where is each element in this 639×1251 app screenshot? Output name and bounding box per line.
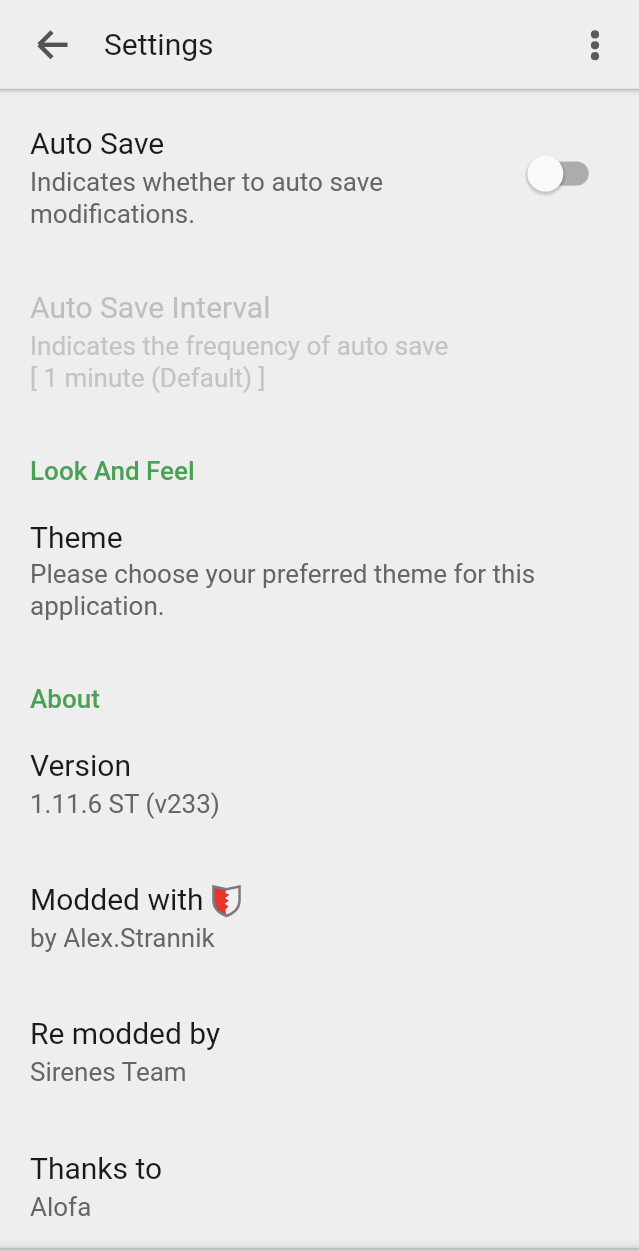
staticText: Please choose your preferred theme for t…: [30, 559, 610, 621]
staticText: Alofa: [30, 1192, 92, 1222]
staticText: Re modded by: [30, 1016, 221, 1051]
staticText: Theme: [30, 520, 123, 555]
staticText: Indicates the frequency of auto save [ 1…: [30, 331, 449, 393]
button[interactable]: Thanks to: [0, 1137, 639, 1202]
button[interactable]: Auto Save Interval: [0, 276, 639, 373]
staticText: About: [30, 684, 100, 714]
staticText: by Alex.Strannik: [30, 923, 215, 953]
staticText: 1.11.6 ST (v233): [30, 789, 220, 819]
staticText: Auto Save: [30, 126, 165, 161]
button[interactable]: Re modded by: [0, 1002, 639, 1067]
staticText: Indicates whether to auto save modificat…: [30, 167, 530, 229]
staticText: Thanks to: [30, 1151, 163, 1186]
staticText: Auto Save Interval: [30, 290, 271, 325]
staticText: Modded with: [30, 882, 204, 917]
button[interactable]: Version: [0, 734, 639, 799]
button[interactable]: Navigate up: [25, 16, 81, 72]
button[interactable]: Look And Feel: [0, 454, 639, 488]
staticText: Settings: [104, 27, 214, 62]
button[interactable]: About: [0, 682, 639, 716]
button[interactable]: Modded with: [0, 868, 639, 933]
button[interactable]: Theme: [0, 506, 639, 603]
button[interactable]: Auto Save: [0, 112, 639, 209]
button[interactable]: Auto Save, off: [524, 153, 616, 195]
staticText: Sirenes Team: [30, 1057, 187, 1087]
staticText: Version: [30, 748, 131, 783]
staticText: Look And Feel: [30, 456, 195, 486]
button[interactable]: More options: [567, 16, 623, 72]
